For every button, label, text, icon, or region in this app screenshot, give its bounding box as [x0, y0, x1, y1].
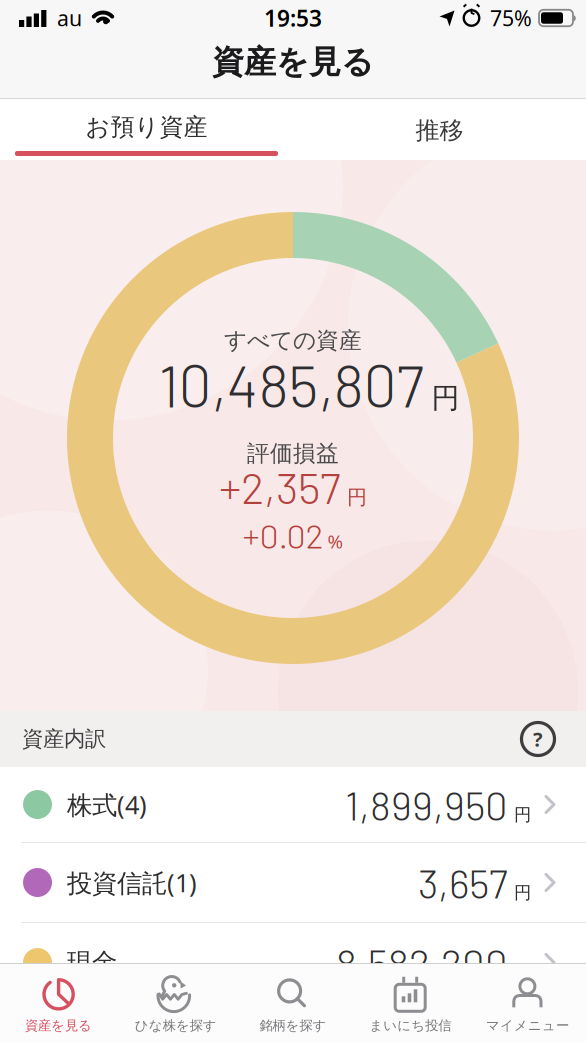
button[interactable]: ヘルプ [521, 722, 555, 756]
staticText: 投資信託(1) [67, 866, 197, 899]
staticText: 評価損益 [247, 440, 339, 467]
staticText: まいにち投信 [369, 1017, 451, 1034]
staticText: 銘柄を探す [259, 1017, 326, 1034]
staticText: 現金 [67, 947, 117, 978]
staticText: 3,657 [418, 858, 508, 906]
staticText: ひな株を探す [135, 1017, 217, 1034]
staticText: すべての資産 [224, 327, 362, 354]
staticText: 円 [514, 804, 531, 825]
button[interactable]: 投資信託(1) [0, 843, 586, 922]
staticText: % [327, 529, 343, 554]
staticText: 円 [347, 485, 367, 510]
staticText: 円 [514, 882, 531, 903]
button[interactable]: 現金 [0, 923, 586, 1002]
staticText: お預り資産 [85, 112, 207, 142]
staticText: マイメニュー [486, 1017, 569, 1034]
staticText: 株式(4) [67, 788, 147, 821]
button[interactable]: まいにち投信 [352, 965, 469, 1041]
button[interactable]: 株式(4) [0, 767, 586, 842]
button[interactable]: 銘柄を探す [234, 965, 352, 1041]
staticText: 8,582,200 [336, 938, 508, 986]
staticText: 資産を見る [25, 1017, 92, 1034]
button[interactable]: お預り資産 [0, 99, 293, 160]
staticText: 円 [431, 381, 459, 415]
staticText: 推移 [415, 116, 463, 145]
staticText: 円 [514, 962, 531, 983]
button[interactable]: 資産を見る [0, 965, 117, 1041]
staticText: 10,485,807 [158, 349, 423, 419]
staticText: ? [533, 726, 543, 752]
staticText: 75% [484, 4, 532, 32]
staticText: au [57, 4, 82, 32]
staticText: 資産内訳 [22, 726, 106, 752]
button[interactable]: ひな株を探す [117, 965, 234, 1041]
staticText: +2,357 [219, 460, 341, 513]
button[interactable]: マイメニュー [469, 965, 586, 1041]
staticText: +0.02 [242, 515, 323, 555]
staticText: 1,899,950 [345, 780, 508, 828]
staticText: 資産を見る [212, 42, 374, 82]
button[interactable]: 推移 [293, 99, 586, 160]
staticText: 19:53 [264, 3, 322, 33]
